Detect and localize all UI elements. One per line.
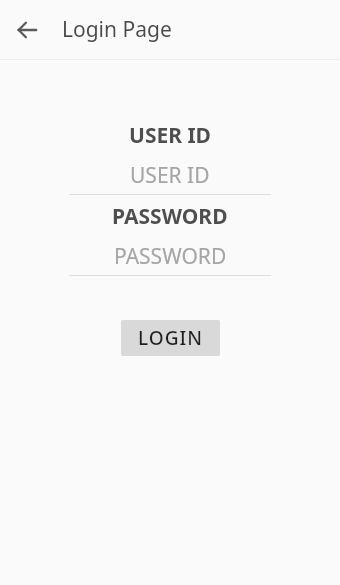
staticText: PASSWORD bbox=[114, 242, 227, 271]
button[interactable]: Back bbox=[5, 8, 49, 52]
staticText: Login Page bbox=[62, 15, 172, 44]
staticText: USER ID bbox=[129, 121, 211, 150]
button[interactable]: LOGIN bbox=[121, 320, 220, 356]
button[interactable]: USER ID bbox=[69, 161, 271, 195]
button[interactable]: PASSWORD bbox=[69, 242, 271, 276]
staticText: LOGIN bbox=[138, 325, 203, 351]
staticText: USER ID bbox=[130, 161, 210, 190]
staticText: PASSWORD bbox=[112, 202, 228, 231]
